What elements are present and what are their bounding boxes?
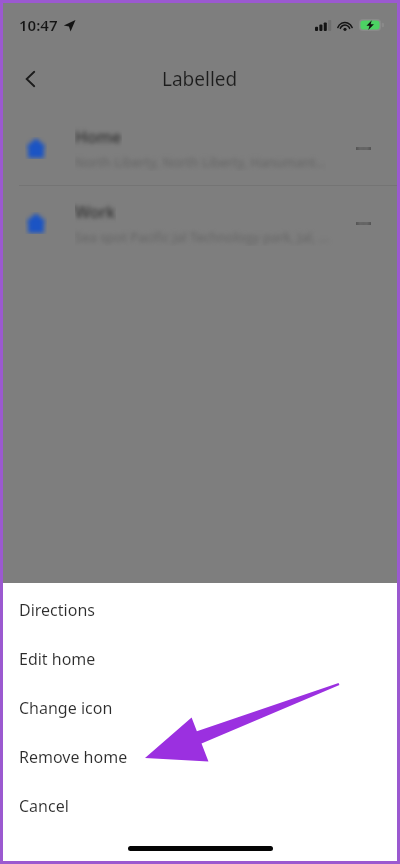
button[interactable]: Directions	[3, 585, 397, 634]
button[interactable]: Back	[9, 57, 53, 101]
staticText: Directions	[19, 599, 95, 621]
staticText: Edit home	[19, 648, 96, 670]
staticText: Home	[75, 126, 122, 148]
staticText: Cancel	[19, 795, 69, 817]
button[interactable]: Change icon	[3, 683, 397, 732]
button[interactable]: Home	[3, 111, 397, 185]
button[interactable]: More options	[341, 126, 385, 170]
button[interactable]: Remove home	[3, 732, 397, 781]
staticText: 10:47	[19, 15, 58, 35]
staticText: Labelled	[162, 66, 238, 92]
button[interactable]: More options	[341, 201, 385, 245]
button[interactable]: Cancel	[3, 781, 397, 830]
button[interactable]: Edit home	[3, 634, 397, 683]
staticText: Change icon	[19, 697, 113, 719]
staticText: Work	[75, 201, 116, 223]
button[interactable]: Work	[3, 186, 397, 260]
staticText: Remove home	[19, 746, 128, 768]
